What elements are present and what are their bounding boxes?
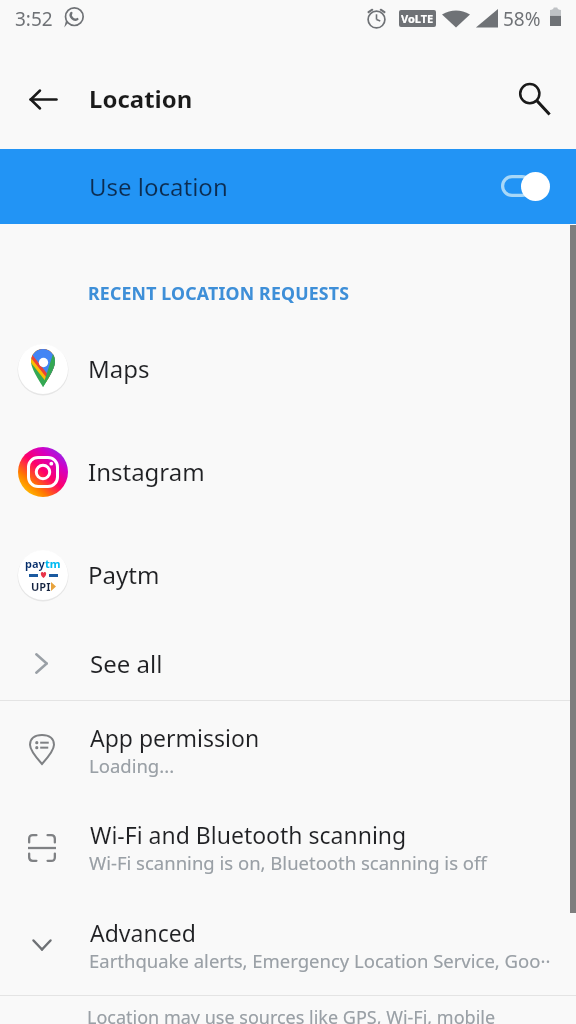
button[interactable]: pay	[0, 523, 576, 626]
staticText: App permission	[90, 722, 260, 753]
staticText: UPI	[31, 579, 51, 594]
staticText: RECENT LOCATION REQUESTS	[88, 281, 350, 305]
staticText: Maps	[88, 352, 150, 385]
staticText: Loading...	[89, 753, 551, 778]
staticText: Wi-Fi and Bluetooth scanning	[90, 819, 407, 850]
staticText: Location may use sources like GPS, Wi-Fi…	[87, 1005, 496, 1024]
staticText: tm	[45, 556, 61, 571]
button[interactable]: Wi-Fi and Bluetooth scanning	[0, 797, 576, 894]
staticText: Paytm	[88, 558, 160, 591]
staticText: See all	[90, 647, 163, 680]
staticText: Wi-Fi scanning is on, Bluetooth scanning…	[89, 850, 551, 875]
button[interactable]: Search	[511, 75, 559, 123]
button[interactable]: Instagram	[0, 420, 576, 523]
button[interactable]: Advanced	[0, 895, 576, 992]
staticText: Location	[89, 82, 193, 115]
staticText: 58%	[503, 6, 541, 32]
button[interactable]: App permission	[0, 700, 576, 797]
button[interactable]: Maps	[0, 317, 576, 420]
staticText: Use location	[89, 170, 228, 203]
staticText: Instagram	[88, 455, 205, 488]
staticText: Advanced	[90, 917, 196, 948]
staticText: 3:52	[15, 6, 53, 32]
staticText: Earthquake alerts, Emergency Location Se…	[89, 948, 551, 973]
staticText: pay	[25, 556, 45, 571]
staticText: VoLTE	[401, 11, 434, 26]
button[interactable]: Use location	[0, 149, 576, 224]
button[interactable]: See all	[0, 640, 576, 687]
button[interactable]: Back	[19, 75, 67, 123]
